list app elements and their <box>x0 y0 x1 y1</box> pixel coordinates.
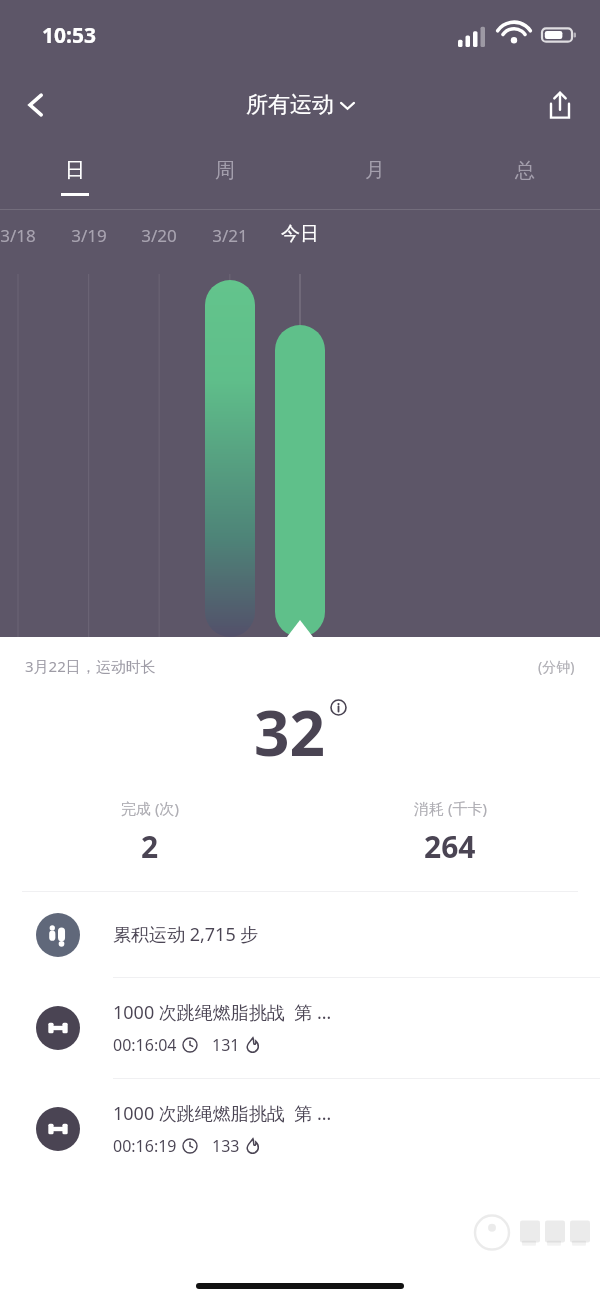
button[interactable]: 周 <box>150 144 300 210</box>
button[interactable]: 说明 <box>329 698 347 716</box>
staticText: 总 <box>515 158 535 183</box>
button[interactable]: 消耗 (千卡) <box>300 798 600 867</box>
staticText: 日 <box>65 158 85 183</box>
button[interactable]: 累积运动 2,715 步 <box>0 892 600 977</box>
button[interactable]: 分享 <box>532 77 588 133</box>
staticText: 3/19 <box>71 224 107 247</box>
button[interactable]: 总 <box>450 144 600 210</box>
staticText: 今日 <box>281 222 319 246</box>
button[interactable]: 1000 次跳绳燃脂挑战 第 … <box>0 978 600 1078</box>
staticText: 月 <box>365 158 385 183</box>
staticText: 3月22日，运动时长 <box>25 656 156 676</box>
staticText: 10:53 <box>42 21 96 50</box>
staticText: 133 <box>212 1135 240 1157</box>
staticText: 完成 (次) <box>121 798 179 818</box>
staticText: 1000 次跳绳燃脂挑战 第 … <box>113 1101 332 1126</box>
button[interactable]: 日 <box>0 144 150 210</box>
button[interactable]: 完成 (次) <box>0 798 300 867</box>
staticText: (分钟) <box>538 657 575 676</box>
button[interactable]: 1000 次跳绳燃脂挑战 第 … <box>0 1079 600 1179</box>
staticText: 周 <box>215 158 235 183</box>
staticText: 00:16:19 <box>113 1135 177 1157</box>
staticText: 00:16:04 <box>113 1034 177 1056</box>
staticText: 消耗 (千卡) <box>414 798 487 818</box>
staticText: 264 <box>424 826 476 867</box>
staticText: 3/21 <box>212 224 248 247</box>
button[interactable]: 月 <box>300 144 450 210</box>
button[interactable]: 返回 <box>8 77 64 133</box>
staticText: 1000 次跳绳燃脂挑战 第 … <box>113 1000 332 1025</box>
staticText: 32 <box>254 690 325 774</box>
staticText: 131 <box>212 1034 240 1056</box>
staticText: 3/18 <box>0 224 36 247</box>
staticText: 所有运动 <box>246 91 334 119</box>
staticText: 2 <box>141 826 159 867</box>
button[interactable]: 所有运动 <box>246 91 354 119</box>
staticText: 3/20 <box>141 224 177 247</box>
staticText: 累积运动 2,715 步 <box>113 922 259 947</box>
